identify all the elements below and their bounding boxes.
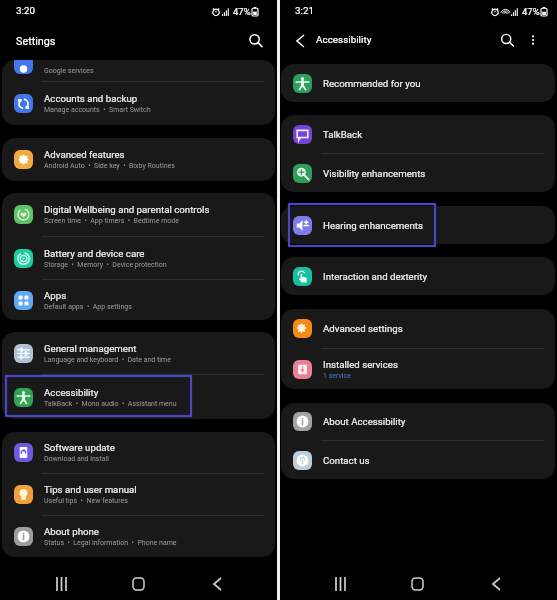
staticText: Advanced features (44, 149, 125, 160)
staticText: TalkBack • Mono audio • Assistant menu (44, 400, 177, 408)
button[interactable]: Battery and device care (2, 237, 275, 279)
button[interactable]: TalkBack (281, 115, 555, 153)
staticText: Settings (16, 35, 56, 48)
button[interactable]: Home (399, 568, 436, 600)
button[interactable]: Interaction and dexterity (281, 257, 555, 295)
staticText: Accessibility (316, 34, 372, 46)
button[interactable]: Advanced settings (281, 309, 555, 348)
staticText: 1 service (323, 372, 351, 380)
staticText: Storage • Memory • Device protection (44, 261, 167, 269)
button[interactable]: Back (199, 568, 236, 600)
button[interactable]: Home (120, 568, 157, 600)
staticText: Android Auto • Side key • Bixby Routines (44, 162, 175, 170)
button[interactable]: More options (520, 27, 545, 52)
button[interactable]: Software update (2, 432, 275, 473)
staticText: Advanced settings (323, 323, 403, 334)
button[interactable]: Advanced features (2, 138, 275, 181)
staticText: Download and install (44, 455, 109, 463)
button[interactable]: Search (243, 28, 268, 53)
button[interactable]: Accounts and backup (2, 82, 275, 125)
button[interactable]: About phone (2, 516, 275, 557)
staticText: Apps (44, 290, 67, 301)
staticText: 47% (233, 6, 251, 17)
staticText: Recommended for you (323, 78, 421, 89)
button[interactable]: Hearing enhancements (281, 206, 555, 244)
staticText: About phone (44, 526, 99, 537)
staticText: Screen time • App timers • Bedtime mode (44, 217, 179, 225)
button[interactable]: Apps (2, 280, 275, 320)
staticText: Battery and device care (44, 248, 145, 259)
button[interactable]: Recommended for you (281, 64, 555, 102)
staticText: Hearing enhancements (323, 220, 423, 231)
staticText: About Accessibility (323, 416, 406, 427)
staticText: Manage accounts • Smart Switch (44, 106, 151, 114)
button[interactable]: Accessibility (2, 375, 275, 419)
button[interactable]: Visibility enhancements (281, 154, 555, 192)
staticText: Google services (44, 67, 94, 75)
staticText: Visibility enhancements (323, 168, 426, 179)
staticText: Status • Legal information • Phone name (44, 539, 177, 547)
staticText: Software update (44, 442, 115, 453)
button[interactable]: Search (495, 28, 520, 53)
staticText: Default apps • App settings (44, 303, 132, 311)
button[interactable]: Tips and user manual (2, 474, 275, 515)
staticText: Digital Wellbeing and parental controls (44, 204, 210, 215)
button[interactable]: About Accessibility (281, 403, 555, 440)
button[interactable]: Back (478, 568, 515, 600)
button[interactable]: Installed services (281, 349, 555, 389)
button[interactable]: Navigate up (288, 28, 313, 53)
staticText: Tips and user manual (44, 484, 137, 495)
button[interactable]: Digital Wellbeing and parental controls (2, 193, 275, 236)
staticText: Contact us (323, 455, 370, 466)
staticText: 47% (522, 6, 540, 17)
staticText: Accounts and backup (44, 93, 138, 104)
staticText: General management (44, 343, 137, 354)
staticText: Useful tips • New features (44, 497, 128, 505)
button[interactable]: General management (2, 332, 275, 374)
staticText: Language and keyboard • Date and time (44, 356, 171, 364)
staticText: Accessibility (44, 387, 99, 398)
staticText: Installed services (323, 359, 398, 370)
staticText: 3:21 (295, 5, 314, 16)
staticText: Interaction and dexterity (323, 271, 428, 282)
staticText: TalkBack (323, 129, 363, 140)
staticText: 3:20 (16, 5, 35, 16)
button[interactable]: Recent apps (322, 568, 359, 600)
button[interactable]: Contact us (281, 441, 555, 479)
button[interactable]: Recent apps (43, 568, 80, 600)
